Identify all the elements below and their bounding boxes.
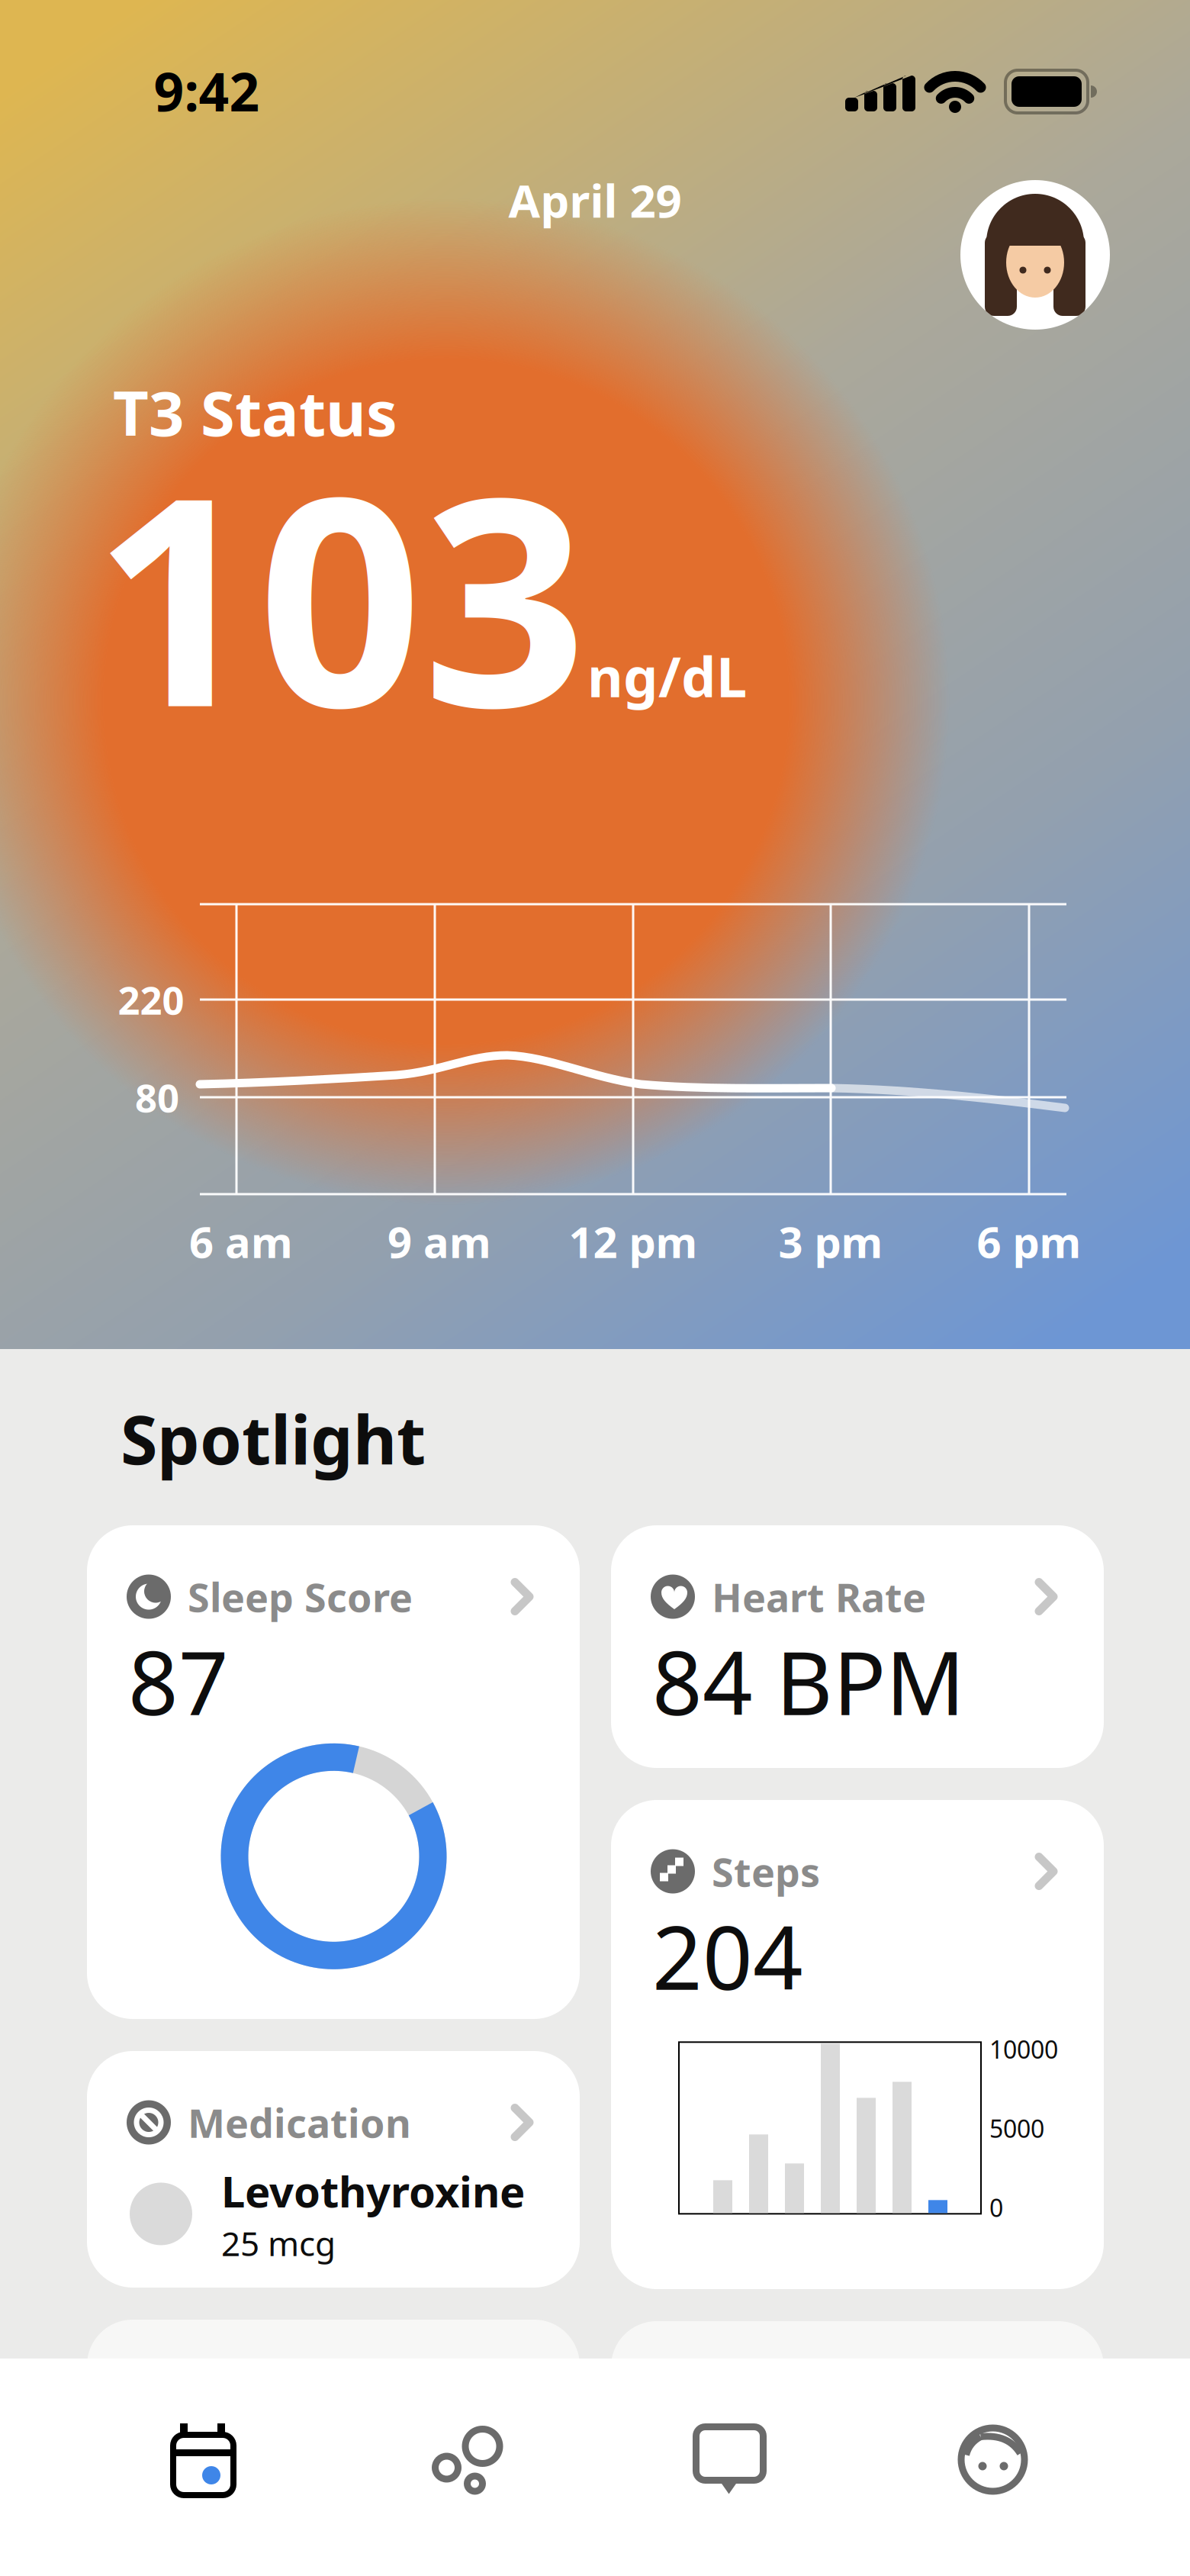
staticText: 0 (989, 2191, 1003, 2224)
staticText: 10000 (989, 2033, 1058, 2065)
button[interactable] (598, 2424, 861, 2495)
staticText: 220 (118, 974, 184, 1025)
button[interactable]: Medication (87, 2051, 580, 2288)
staticText: ng/dL (587, 639, 747, 712)
staticText: 6 am (189, 1213, 293, 1270)
staticText: 5000 (989, 2112, 1044, 2145)
staticText: 103 (93, 403, 587, 786)
button[interactable]: Heart Rate (611, 1525, 1104, 1768)
button[interactable] (960, 180, 1110, 330)
staticText: 87 (128, 1623, 229, 1739)
staticText: April 29 (508, 170, 682, 230)
staticText: 80 (135, 1072, 179, 1123)
staticText: 84 BPM (652, 1623, 965, 1739)
staticText: Steps (712, 1845, 820, 1898)
staticText: 12 pm (569, 1213, 698, 1270)
staticText: 3 pm (778, 1213, 883, 1270)
staticText: 204 (652, 1898, 803, 2014)
button[interactable] (335, 2424, 598, 2495)
button[interactable] (72, 2423, 335, 2496)
staticText: Sleep Score (188, 1570, 413, 1623)
button[interactable]: Steps (611, 1800, 1104, 2289)
staticText: Medication (188, 2096, 411, 2149)
staticText: T3 Status (113, 371, 397, 453)
staticText: 25 mcg (221, 2221, 336, 2265)
staticText: Heart Rate (712, 1570, 926, 1623)
staticText: Levothyroxine (221, 2163, 525, 2219)
staticText: 9 am (388, 1213, 491, 1270)
staticText: Spotlight (121, 1394, 426, 1483)
button[interactable]: Sleep Score (87, 1525, 580, 2019)
staticText: 9:42 (154, 56, 260, 126)
button[interactable] (861, 2425, 1124, 2495)
staticText: 6 pm (977, 1213, 1081, 1270)
